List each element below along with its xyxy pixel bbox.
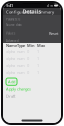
- staticText: 0: [27, 49, 29, 54]
- staticText: Advanced: [6, 39, 19, 43]
- button[interactable]: Apply changes: [6, 86, 31, 92]
- staticText: Apply changes: [6, 86, 31, 92]
- staticText: ≈: [50, 3, 53, 8]
- staticText: Values: [6, 32, 15, 35]
- staticText: 1: [37, 56, 39, 61]
- staticText: alpha: [6, 49, 15, 54]
- staticText: Min: [27, 43, 35, 48]
- staticText: 0: [27, 63, 29, 68]
- button[interactable]: Add: [6, 78, 17, 85]
- button[interactable]: Reset: [49, 31, 58, 36]
- staticText: alpha: [6, 56, 15, 61]
- staticText: Type: [17, 43, 25, 48]
- staticText: Draft: [6, 94, 15, 99]
- staticText: ıl: [47, 3, 49, 8]
- staticText: Reset: [49, 31, 58, 36]
- staticText: 9:41: [6, 3, 13, 8]
- staticText: num: [17, 56, 25, 61]
- staticText: 0: [27, 70, 29, 75]
- staticText: alpha: [6, 70, 15, 75]
- staticText: Max: [37, 43, 45, 48]
- staticText: 1: [37, 49, 39, 54]
- staticText: 0: [27, 56, 29, 61]
- staticText: Add: [8, 79, 15, 84]
- staticText: alpha: [6, 63, 15, 68]
- staticText: Name: [6, 43, 17, 48]
- staticText: Source data: [6, 23, 21, 27]
- staticText: num: [17, 49, 25, 54]
- staticText: Configuration summary: [6, 9, 54, 15]
- staticText: num: [17, 70, 25, 75]
- staticText: Parameters: [6, 18, 20, 21]
- staticText: 1: [37, 70, 39, 75]
- staticText: 1: [37, 63, 39, 68]
- staticText: num: [17, 63, 25, 68]
- staticText: Details: [22, 8, 41, 15]
